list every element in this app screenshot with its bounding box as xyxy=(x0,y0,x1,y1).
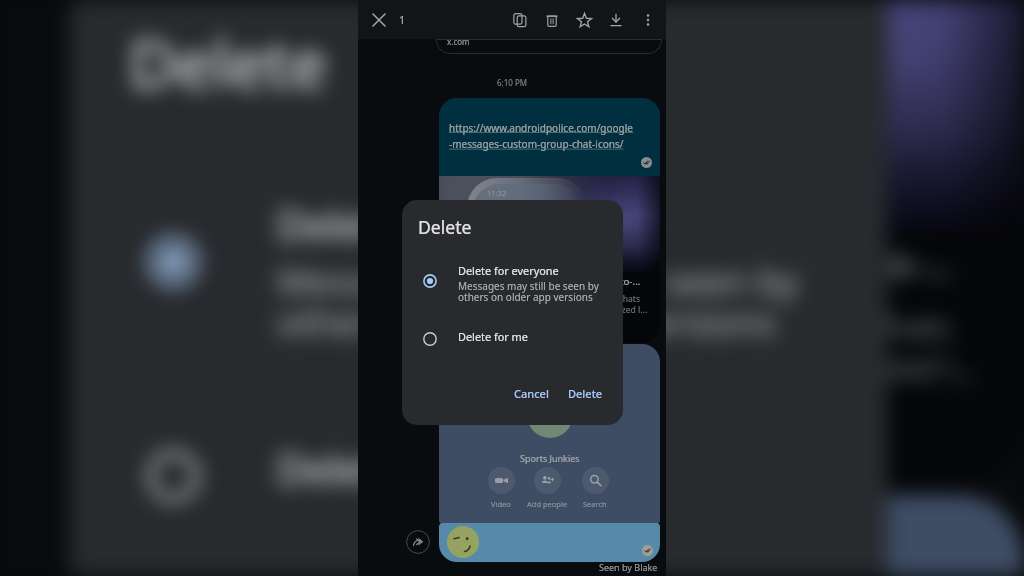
staticText: Joining the group chat is now easier, go… xyxy=(448,293,660,305)
staticText: Add people xyxy=(527,499,568,509)
staticText: Delete xyxy=(568,386,603,401)
button[interactable]: Delete for me xyxy=(70,432,887,521)
button[interactable]: Delete xyxy=(560,382,611,405)
staticText: Search xyxy=(583,499,607,509)
button[interactable]: Download xyxy=(600,4,632,36)
button[interactable]: Add people xyxy=(507,467,587,509)
staticText: Joining the group chat is now easier, go… xyxy=(240,306,1024,350)
staticText: Seen by Blake xyxy=(599,561,658,573)
staticText: x.com xyxy=(447,39,470,47)
staticText: Delete for everyone xyxy=(277,195,651,251)
staticText: Google Messages will soon let you auto-.… xyxy=(448,275,660,288)
button[interactable]: Delete xyxy=(536,4,568,36)
button[interactable]: Delete for everyone xyxy=(402,263,623,311)
staticText: Sports Junkies xyxy=(520,452,580,464)
button[interactable]: Delete for everyone xyxy=(70,195,887,373)
button[interactable]: Cancel xyxy=(506,382,557,405)
staticText: Messages may still be seen by others on … xyxy=(458,279,599,304)
button[interactable]: Search xyxy=(555,467,635,509)
staticText: Messages may still be seen by others on … xyxy=(277,254,799,347)
staticText: Google Messages will soon let you auto-.… xyxy=(240,239,1024,288)
staticText: Delete xyxy=(129,17,329,106)
staticText: you want all of these group chats person… xyxy=(448,304,660,316)
button[interactable]: Forward xyxy=(406,530,430,554)
staticText: you want all of these group chats person… xyxy=(240,347,1024,391)
staticText: Delete for me xyxy=(277,439,536,495)
staticText: 6:10 PM xyxy=(497,77,528,88)
button[interactable]: Star xyxy=(568,4,600,36)
staticText: Video xyxy=(491,499,511,509)
staticText: 11:32 xyxy=(487,188,507,198)
button[interactable]: More options xyxy=(632,4,664,36)
staticText: 1 xyxy=(399,12,406,27)
button[interactable]: Copy xyxy=(504,4,536,36)
staticText: Delete xyxy=(418,215,472,239)
staticText: Delete for me xyxy=(458,329,528,344)
staticText: Cancel xyxy=(514,386,549,401)
button[interactable]: Delete for me xyxy=(402,327,623,351)
staticText: Delete for everyone xyxy=(458,263,559,278)
button[interactable]: Video xyxy=(461,467,541,509)
button[interactable]: Close xyxy=(366,7,392,33)
staticText: https://www.androidpolice.com/google -me… xyxy=(449,121,654,151)
